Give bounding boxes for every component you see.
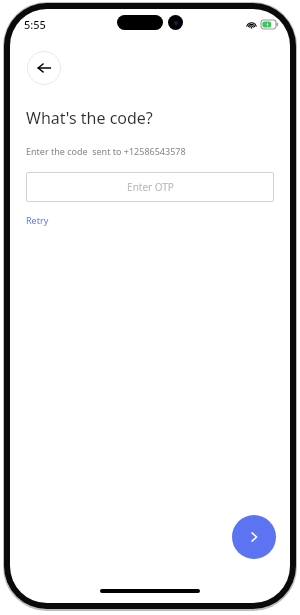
staticText: Retry (26, 214, 49, 226)
button[interactable]: Next (232, 515, 276, 559)
button[interactable]: Enter OTP (26, 172, 274, 202)
staticText: 5:55 (24, 17, 46, 32)
button[interactable]: Back (27, 51, 61, 85)
button[interactable]: Retry (26, 212, 49, 228)
staticText: Enter the code sent to +12586543578 (26, 145, 186, 157)
staticText: What's the code? (26, 107, 153, 129)
staticText: Enter OTP (127, 180, 174, 194)
